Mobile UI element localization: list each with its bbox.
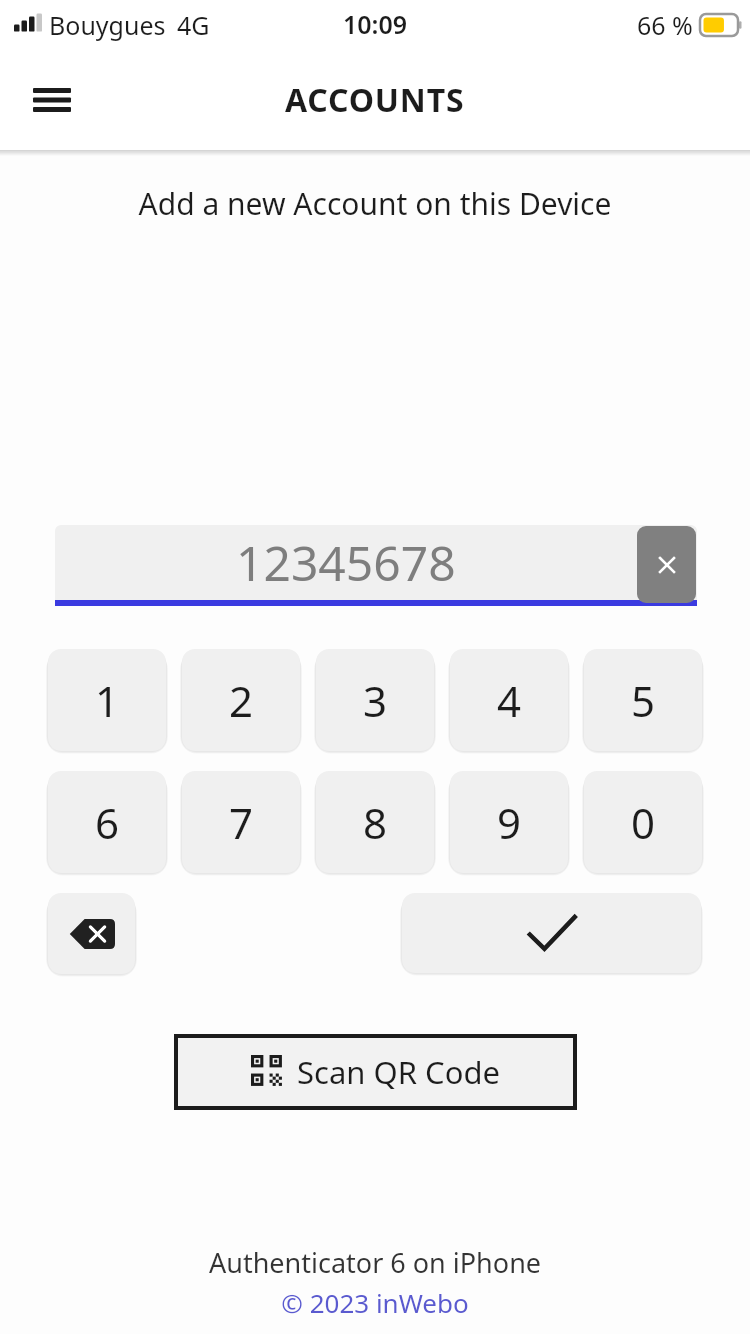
staticText: 7 — [229, 794, 254, 851]
staticText: 4G — [177, 8, 210, 42]
button[interactable]: 9 — [450, 771, 568, 873]
button[interactable]: Validate — [402, 893, 701, 973]
staticText: 66 % — [637, 8, 693, 42]
button[interactable]: 7 — [182, 771, 300, 873]
staticText: Scan QR Code — [297, 1051, 500, 1093]
staticText: 6 — [95, 794, 120, 851]
staticText: 9 — [497, 794, 522, 851]
staticText: Add a new Account on this Device — [0, 183, 750, 224]
button[interactable]: 6 — [48, 771, 166, 873]
button[interactable] — [55, 525, 697, 600]
staticText: 2 — [229, 672, 254, 729]
button[interactable]: Clear — [637, 526, 696, 603]
button[interactable]: Backspace — [48, 893, 135, 974]
staticText: 0 — [631, 794, 656, 851]
button[interactable]: 8 — [316, 771, 434, 873]
staticText: 10:09 — [343, 7, 408, 41]
staticText: © 2023 inWebo — [0, 1285, 750, 1320]
button[interactable]: Scan QR Code — [176, 1036, 575, 1108]
button[interactable]: 2 — [182, 649, 300, 751]
staticText: Authenticator 6 on iPhone — [0, 1244, 750, 1281]
button[interactable]: 3 — [316, 649, 434, 751]
button[interactable]: Menu — [26, 74, 78, 126]
button[interactable]: 4 — [450, 649, 568, 751]
staticText: 5 — [631, 672, 656, 729]
staticText: 4 — [497, 672, 522, 729]
button[interactable]: 5 — [584, 649, 702, 751]
staticText: 12345678 — [236, 530, 456, 595]
staticText: 8 — [363, 794, 388, 851]
staticText: 1 — [95, 672, 120, 729]
button[interactable]: 0 — [584, 771, 702, 873]
other: Backspace — [48, 893, 135, 974]
staticText: Bouygues — [49, 8, 166, 42]
other: Validate — [402, 893, 701, 973]
button[interactable]: 1 — [48, 649, 166, 751]
staticText: 3 — [363, 672, 388, 729]
staticText: ACCOUNTS — [285, 78, 465, 122]
